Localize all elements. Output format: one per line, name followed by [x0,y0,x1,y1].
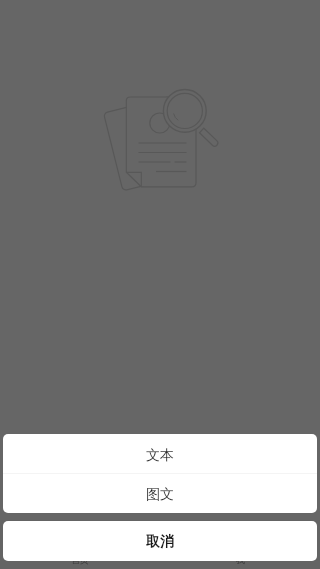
button[interactable]: 首页 [0,520,160,569]
staticText: 取消 [146,533,174,551]
button[interactable]: Dismiss [0,0,320,569]
staticText: 文本 [146,447,174,465]
button[interactable]: 取消 [3,521,317,561]
button[interactable]: 我 [160,520,320,569]
staticText: 我 [236,554,245,565]
button[interactable]: 文本 [3,434,317,473]
staticText: 图文 [146,486,174,504]
staticText: 首页 [71,554,89,565]
button[interactable]: 图文 [3,474,317,513]
